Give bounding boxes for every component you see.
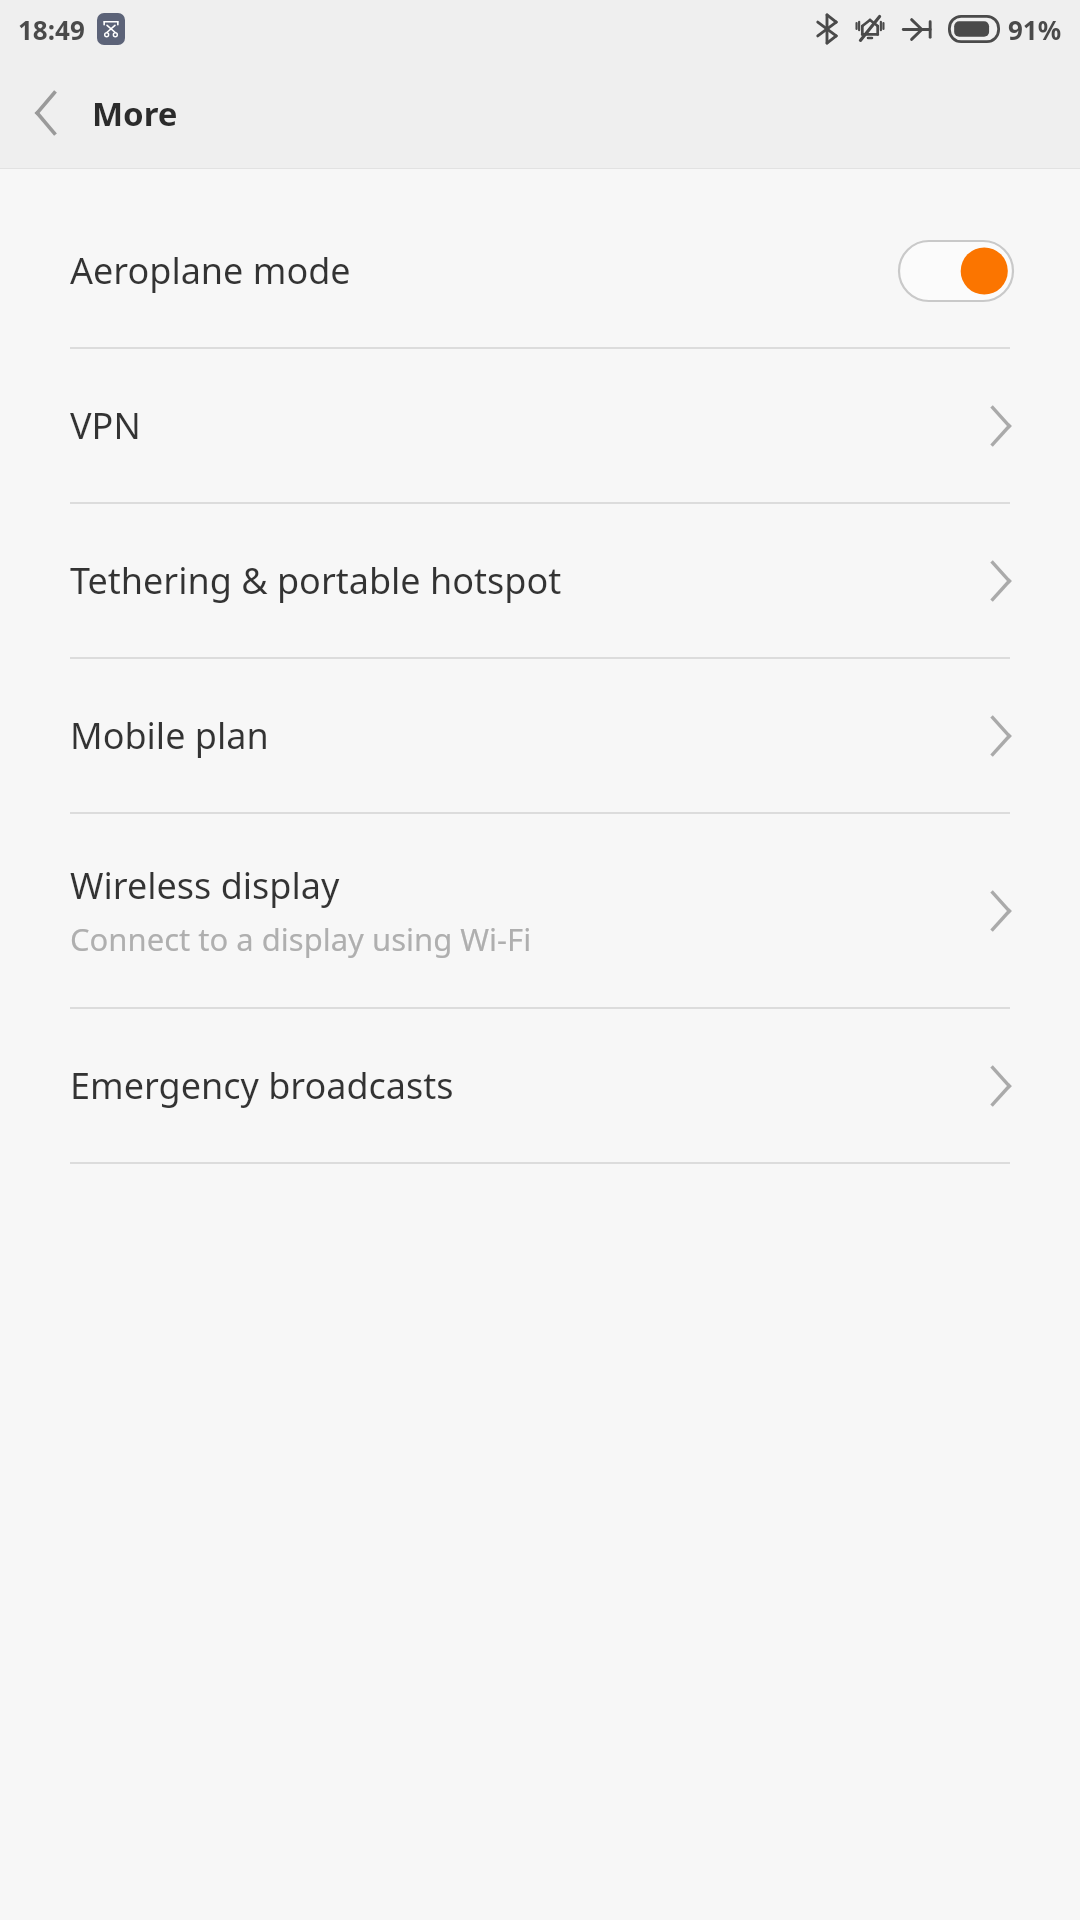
staticText: Connect to a display using Wi-Fi [70,918,532,960]
button[interactable]: Tethering & portable hotspot [0,504,1080,657]
staticText: 91% [1008,12,1062,47]
staticText: Wireless display [70,861,340,910]
button[interactable]: Aeroplane mode [0,194,1080,347]
staticText: 18:49 [18,12,85,47]
button[interactable]: Wireless display [0,814,1080,1007]
staticText: VPN [70,401,141,450]
staticText: Aeroplane mode [70,246,351,295]
button[interactable]: Back [0,58,92,168]
staticText: Tethering & portable hotspot [70,556,562,605]
staticText: More [92,91,178,136]
staticText: Mobile plan [70,711,269,760]
button[interactable]: Emergency broadcasts [0,1009,1080,1162]
button[interactable]: Mobile plan [0,659,1080,812]
button[interactable]: VPN [0,349,1080,502]
button[interactable]: Aeroplane mode toggle [898,240,1014,302]
staticText: Emergency broadcasts [70,1061,454,1110]
